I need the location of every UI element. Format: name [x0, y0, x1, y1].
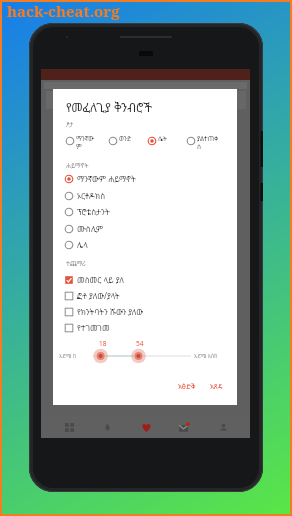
- staticText: ሐይማኖት: [66, 161, 89, 170]
- staticText: ማንኛውም ሐይማኖት: [77, 173, 136, 184]
- button[interactable]: ያልተጠቀሰ: [186, 134, 219, 151]
- staticText: ፕሮቴስታንት: [77, 206, 110, 217]
- button[interactable]: Profile: [212, 416, 234, 438]
- button[interactable]: Messages: [173, 416, 195, 438]
- staticText: ማንኛውም: [76, 134, 99, 151]
- button[interactable]: Notifications: [96, 416, 118, 438]
- staticText: አጸዳ: [210, 382, 223, 392]
- staticText: አፅድቅ: [178, 382, 196, 392]
- button[interactable]: Favorites: [135, 416, 157, 438]
- staticText: hack-cheat.org: [7, 1, 120, 21]
- button[interactable]: Home: [58, 416, 80, 438]
- button[interactable]: አፅድቅ: [174, 379, 200, 395]
- button[interactable]: መስመር ላይ ያለ: [64, 272, 224, 287]
- staticText: የመፈለጊያ ቅንብሮች: [66, 99, 152, 115]
- staticText: ሴት: [158, 134, 167, 143]
- staticText: 54: [136, 339, 144, 348]
- staticText: ሌላ: [77, 239, 88, 250]
- staticText: ወንድ: [119, 134, 132, 143]
- staticText: እድሜ እስከ: [194, 352, 218, 359]
- button[interactable]: ፕሮቴስታንት: [64, 204, 224, 219]
- button[interactable]: ማንኛውም ሐይማኖት: [64, 171, 224, 186]
- button[interactable]: ሌላ: [64, 237, 224, 252]
- button[interactable]: ሴት: [147, 134, 191, 144]
- staticText: ሙስሊም: [77, 223, 103, 234]
- button[interactable]: የተገመገመ: [64, 320, 224, 335]
- staticText: መስመር ላይ ያለ: [77, 274, 125, 285]
- staticText: እድሜ ከ: [59, 352, 77, 359]
- staticText: ፆታ: [66, 120, 74, 129]
- staticText: ፎቶ ያለው/ያላት: [77, 290, 120, 301]
- button[interactable]: አጸዳ: [206, 379, 227, 395]
- button[interactable]: ኦርቶዶክስ: [64, 188, 224, 203]
- button[interactable]: ፎቶ ያለው/ያላት: [64, 288, 224, 303]
- staticText: ተጨማሪ: [66, 259, 86, 268]
- staticText: የተገመገመ: [77, 322, 110, 333]
- button[interactable]: የክንትባትን ሹውን ያለው: [64, 304, 224, 319]
- staticText: የክንትባትን ሹውን ያለው: [77, 306, 144, 317]
- staticText: ኦርቶዶክስ: [77, 190, 106, 201]
- button[interactable]: ማንኛውም: [65, 134, 99, 151]
- staticText: 18: [99, 339, 107, 348]
- button[interactable]: ሙስሊም: [64, 221, 224, 236]
- staticText: ያልተጠቀሰ: [197, 134, 219, 151]
- button[interactable]: ወንድ: [108, 134, 152, 144]
